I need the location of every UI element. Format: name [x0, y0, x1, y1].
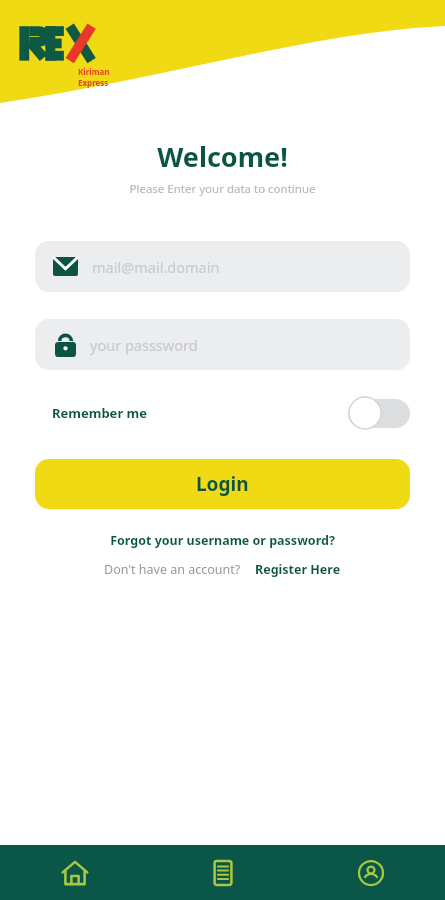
button[interactable]: Profile: [297, 845, 445, 900]
staticText: Please Enter your data to continue: [0, 181, 445, 197]
button[interactable]: Login: [35, 459, 410, 509]
staticText: your passsword: [90, 335, 198, 355]
staticText: Kiriman: [78, 66, 110, 77]
button[interactable]: Forgot your username or password?: [0, 529, 445, 552]
staticText: Forgot your username or password?: [0, 532, 445, 549]
button[interactable]: your passsword: [35, 319, 410, 370]
button[interactable]: Remember me toggle: [348, 396, 410, 430]
staticText: Welcome!: [0, 138, 445, 175]
staticText: Register Here: [255, 561, 341, 578]
button[interactable]: mail@mail.domain: [35, 241, 410, 292]
staticText: Don't have an account?: [104, 561, 241, 578]
staticText: Express: [78, 77, 109, 88]
button[interactable]: Orders: [149, 845, 297, 900]
button[interactable]: Register Here: [241, 561, 341, 578]
staticText: Remember me: [52, 404, 148, 422]
button[interactable]: Home: [0, 845, 149, 900]
staticText: Login: [196, 471, 249, 497]
staticText: mail@mail.domain: [92, 257, 220, 277]
